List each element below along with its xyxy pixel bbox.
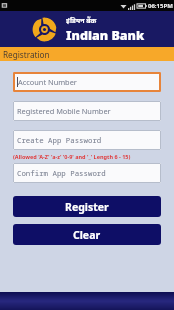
staticText: Indian Bank	[66, 27, 145, 44]
button[interactable]: Registered Mobile Number	[13, 101, 161, 121]
button[interactable]: Clear	[13, 224, 161, 245]
staticText: Registered Mobile Number	[17, 106, 111, 116]
staticText: Account Number	[18, 77, 77, 87]
button[interactable]: Register	[13, 196, 161, 217]
staticText: Clear	[73, 228, 101, 242]
staticText: Create App Password	[17, 135, 102, 145]
other: Notification	[1, 2, 8, 10]
button[interactable]: Account Number	[13, 72, 161, 92]
staticText: 06:15PM	[148, 2, 173, 10]
button[interactable]: Create App Password	[13, 130, 161, 150]
staticText: इंडियन बैंक	[66, 16, 97, 26]
staticText: (Allowed 'A-Z' 'a-z' '0-9' and '_' Lengt…	[13, 153, 131, 160]
staticText: Register	[65, 200, 109, 214]
staticText: Confirm App Password	[17, 168, 106, 178]
button[interactable]: Confirm App Password	[13, 163, 161, 183]
staticText: Registration	[3, 49, 50, 60]
